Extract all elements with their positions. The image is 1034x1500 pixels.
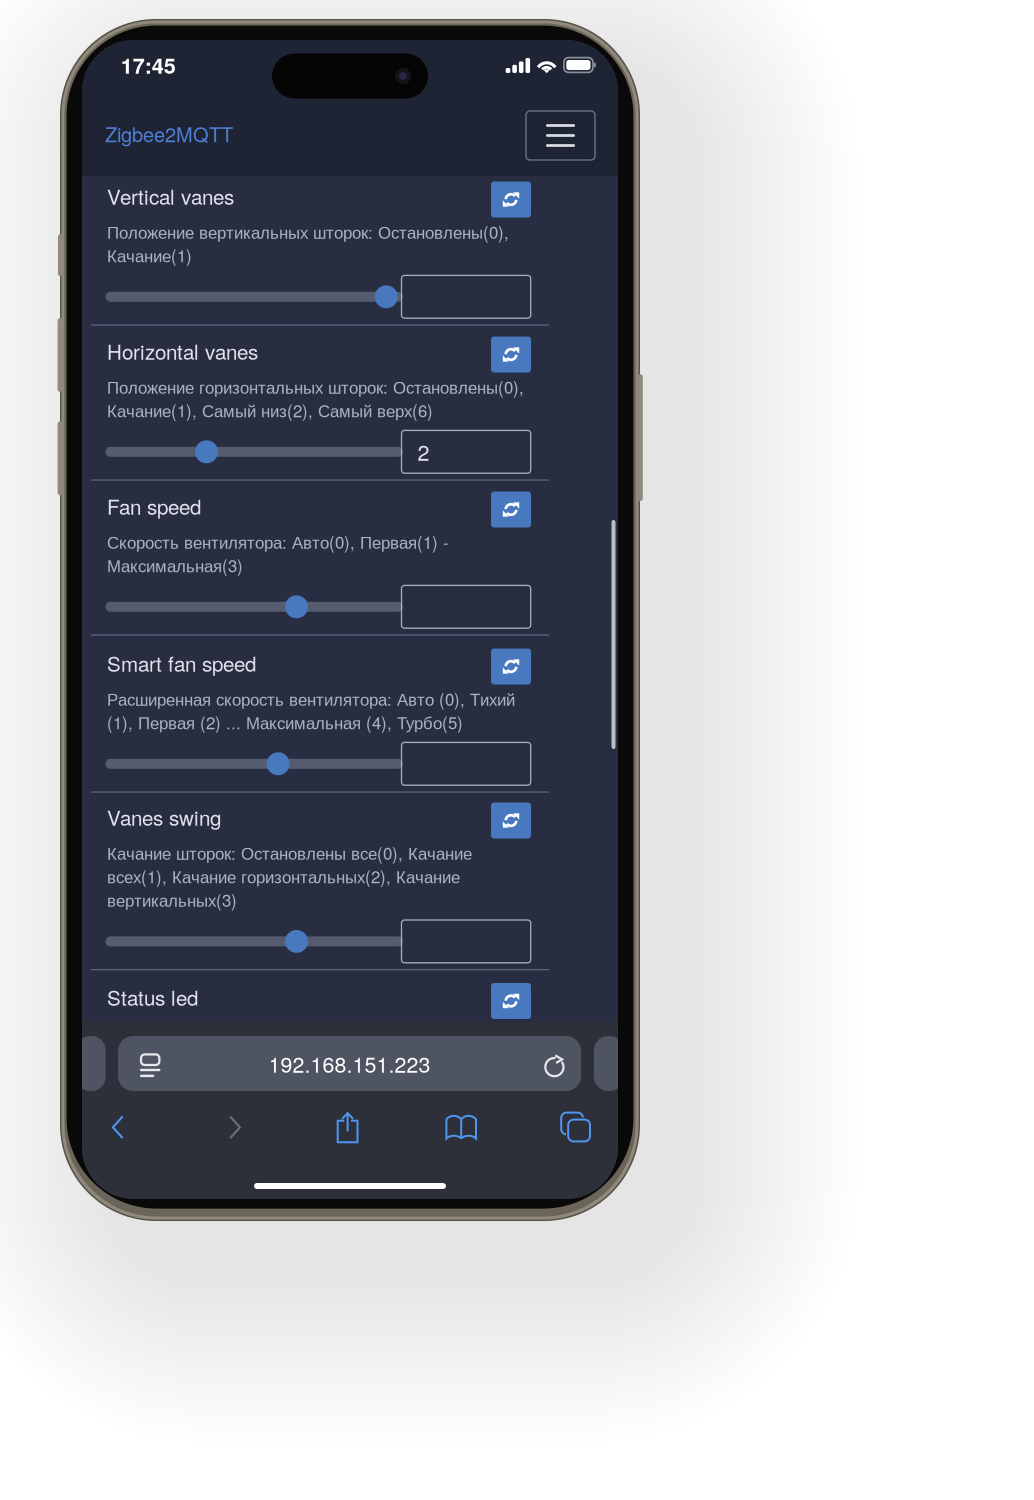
button[interactable]: Tabs bbox=[560, 1111, 591, 1142]
staticText: Положение вертикальных шторок: Остановле… bbox=[107, 219, 509, 243]
button[interactable]: Bookmarks bbox=[445, 1114, 477, 1140]
button[interactable]: Page settings bbox=[140, 1053, 160, 1077]
button[interactable]: 192.168.151.223 bbox=[118, 1036, 581, 1091]
button[interactable]: Refresh Vanes swing bbox=[491, 802, 531, 838]
staticText: Horizontal vanes bbox=[107, 336, 258, 366]
button[interactable]: Reload bbox=[544, 1054, 565, 1078]
button[interactable]: Refresh Status led bbox=[491, 983, 531, 1019]
button[interactable]: Menu bbox=[526, 111, 595, 160]
staticText: Максимальная(3) bbox=[107, 553, 243, 577]
staticText: вертикальных(3) bbox=[107, 888, 237, 912]
button[interactable]: Back bbox=[111, 1115, 124, 1139]
staticText: 17:45 bbox=[121, 49, 176, 80]
button[interactable]: Refresh Horizontal vanes bbox=[491, 336, 531, 372]
staticText: Vertical vanes bbox=[107, 181, 234, 211]
staticText: 2 bbox=[417, 436, 429, 467]
staticText: Vanes swing bbox=[107, 802, 221, 831]
staticText: Положение горизонтальных шторок: Останов… bbox=[107, 374, 524, 398]
staticText: Качание шторок: Остановлены все(0), Кача… bbox=[107, 840, 472, 864]
button[interactable]: Refresh Vertical vanes bbox=[491, 181, 531, 217]
staticText: Zigbee2MQTT bbox=[105, 119, 233, 148]
button[interactable]: Refresh Smart fan speed bbox=[491, 648, 531, 684]
staticText: всех(1), Качание горизонтальных(2), Кача… bbox=[107, 864, 460, 888]
staticText: Расширенная скорость вентилятора: Авто (… bbox=[107, 686, 515, 710]
staticText: Качание(1), Самый низ(2), Самый верх(6) bbox=[107, 398, 433, 422]
button[interactable]: Share bbox=[335, 1112, 361, 1143]
staticText: (1), Первая (2) ... Максимальная (4), Ту… bbox=[107, 710, 463, 734]
staticText: Fan speed bbox=[107, 491, 201, 521]
staticText: 192.168.151.223 bbox=[268, 1048, 430, 1079]
button[interactable]: Zigbee2MQTT bbox=[105, 118, 245, 148]
button[interactable]: Forward bbox=[228, 1115, 241, 1139]
staticText: Качание(1) bbox=[107, 243, 192, 267]
staticText: Скорость вентилятора: Авто(0), Первая(1)… bbox=[107, 529, 449, 553]
staticText: Smart fan speed bbox=[107, 648, 256, 677]
staticText: Status led bbox=[107, 982, 198, 1011]
button[interactable]: Refresh Fan speed bbox=[491, 491, 531, 527]
